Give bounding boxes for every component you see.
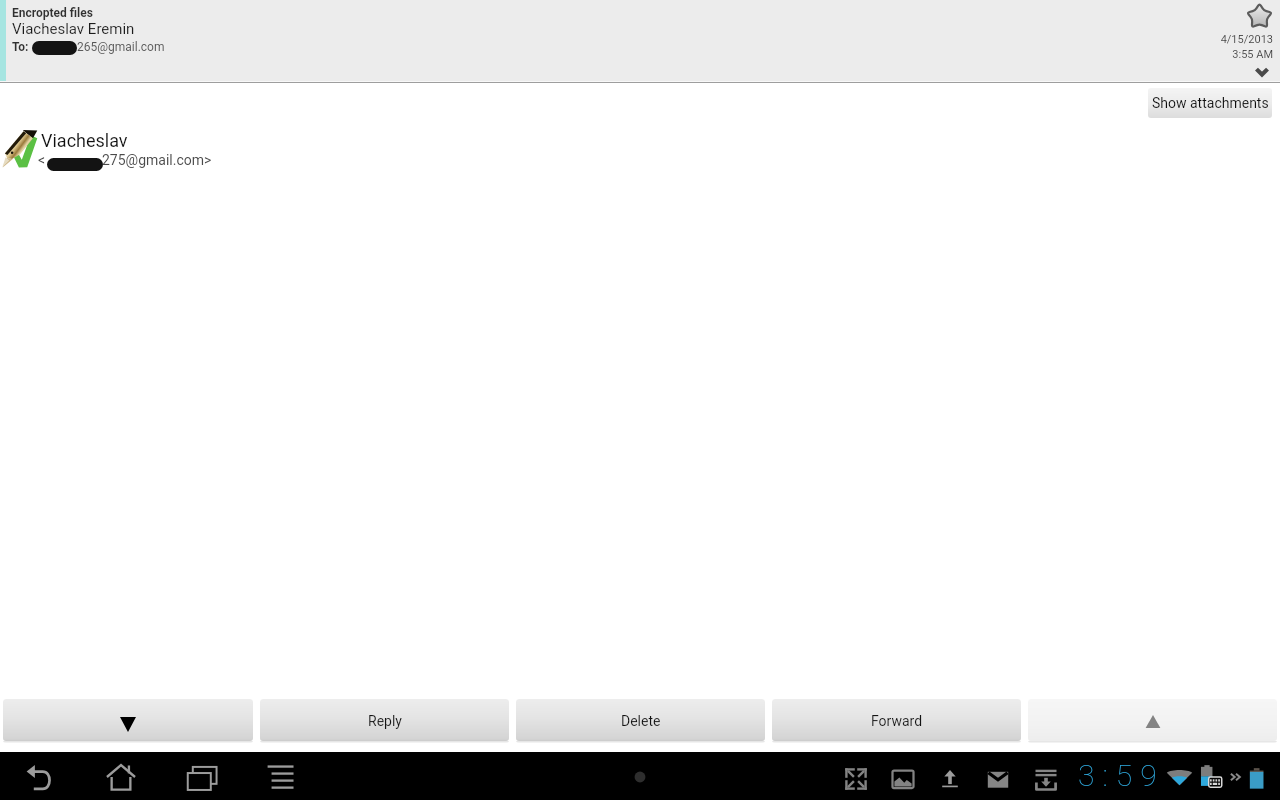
button[interactable]: New mail (983, 764, 1013, 794)
staticText: 4/15/2013 (1173, 33, 1273, 46)
button[interactable]: Collapse details (1250, 64, 1274, 80)
staticText: Forward (871, 713, 923, 729)
button[interactable]: Recent apps (182, 759, 218, 795)
staticText: < (38, 152, 46, 168)
button[interactable]: Download (1031, 764, 1061, 794)
button[interactable]: Reply (260, 699, 509, 743)
button[interactable]: Forward (772, 699, 1021, 743)
staticText: Delete (621, 713, 661, 729)
staticText: Encropted files (12, 6, 93, 20)
staticText: 265@gmail.com (77, 40, 165, 54)
button[interactable]: Fullscreen (841, 764, 871, 794)
staticText: To: (12, 40, 32, 54)
button[interactable]: Home (103, 759, 139, 795)
staticText: Reply (368, 713, 402, 729)
button[interactable]: Star (1245, 1, 1274, 30)
button[interactable]: Show attachments (1148, 88, 1272, 118)
button[interactable]: Encropted files (0, 0, 1280, 81)
staticText: Show attachments (1152, 95, 1269, 111)
button[interactable]: Screenshot (888, 764, 918, 794)
button[interactable]: Older message (1028, 699, 1277, 743)
staticText: 3:59 (1078, 758, 1165, 793)
staticText: Viacheslav Eremin (12, 20, 135, 38)
button[interactable]: Back (23, 759, 59, 795)
button[interactable]: Menu (264, 759, 300, 795)
staticText: 275@gmail.com> (102, 152, 212, 168)
button[interactable]: Upload (935, 764, 965, 794)
button[interactable]: Newer message (3, 699, 253, 743)
staticText: Viacheslav (41, 130, 128, 151)
button[interactable]: Delete (516, 699, 765, 743)
staticText: 3:55 AM (1173, 48, 1273, 61)
